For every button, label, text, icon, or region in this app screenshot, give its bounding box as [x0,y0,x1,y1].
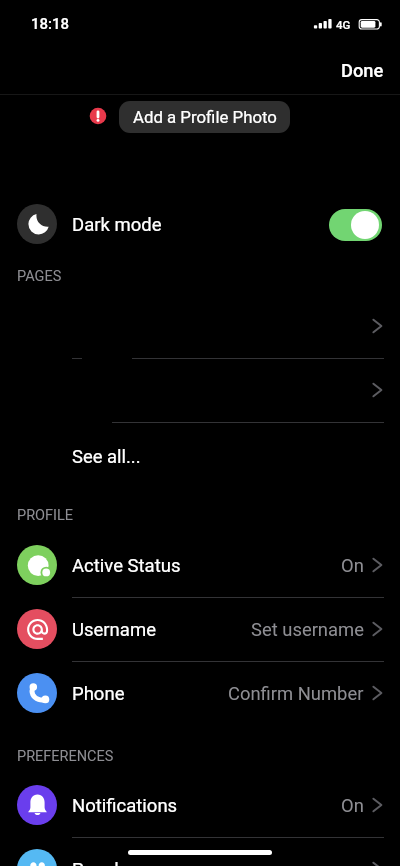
staticText: See all... [72,446,141,468]
button[interactable]: Done [330,52,384,88]
staticText: Username [72,619,156,641]
staticText: Done [341,60,384,81]
staticText: Set username [251,619,364,641]
staticText: 4G [336,18,351,31]
staticText: On [341,795,364,817]
staticText: Dark mode [72,214,162,236]
staticText: Phone [72,683,125,705]
button[interactable]: Dark mode toggle [329,209,382,241]
staticText: Confirm Number [228,683,364,705]
staticText: 18:18 [31,15,70,33]
button[interactable] [0,661,400,725]
staticText: PREFERENCES [17,748,114,765]
staticText: People [72,859,129,866]
button[interactable] [0,422,400,486]
button[interactable] [0,597,400,661]
button[interactable]: Page [0,358,400,422]
staticText: PROFILE [17,507,74,524]
button[interactable] [0,837,400,866]
button[interactable] [0,773,400,837]
button[interactable] [0,192,400,256]
staticText: PAGES [17,268,62,285]
staticText: Add a Profile Photo [133,107,277,127]
button[interactable] [0,533,400,597]
staticText: On [341,555,364,577]
staticText: Active Status [72,555,181,577]
button[interactable]: Page [0,294,400,358]
other: Warning [89,107,108,126]
button[interactable]: Add a Profile Photo [119,101,290,133]
staticText: Notifications [72,795,178,817]
